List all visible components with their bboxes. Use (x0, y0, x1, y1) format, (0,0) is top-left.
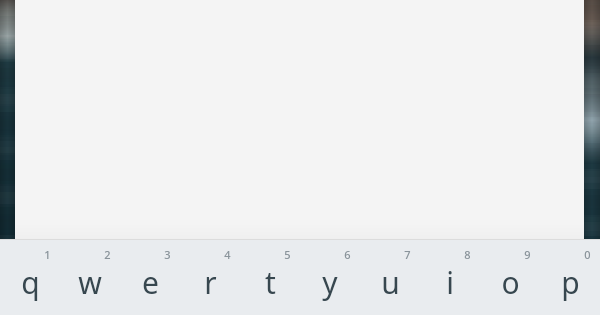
staticText: 8 (464, 247, 471, 262)
staticText: w (78, 262, 102, 303)
button[interactable]: 4 (180, 240, 240, 315)
staticText: i (446, 262, 454, 303)
other: Background photo (0, 0, 15, 240)
staticText: 1 (44, 247, 51, 262)
button[interactable]: 5 (240, 240, 300, 315)
staticText: 5 (284, 247, 291, 262)
staticText: 7 (404, 247, 411, 262)
button[interactable]: 3 (120, 240, 180, 315)
staticText: 9 (524, 247, 531, 262)
staticText: r (204, 262, 217, 303)
button[interactable]: 2 (60, 240, 120, 315)
staticText: t (265, 262, 276, 303)
staticText: q (21, 262, 40, 303)
button[interactable]: 6 (300, 240, 360, 315)
button[interactable]: 1 (0, 240, 60, 315)
button[interactable]: 9 (480, 240, 540, 315)
button[interactable]: 8 (420, 240, 480, 315)
staticText: 6 (344, 247, 351, 262)
staticText: 4 (224, 247, 231, 262)
staticText: u (381, 262, 400, 303)
button[interactable]: 0 (540, 240, 600, 315)
staticText: 0 (584, 247, 591, 262)
other: Background photo (584, 0, 600, 240)
staticText: p (561, 262, 580, 303)
staticText: o (501, 262, 520, 303)
button[interactable]: 7 (360, 240, 420, 315)
staticText: 3 (164, 247, 171, 262)
staticText: 2 (104, 247, 111, 262)
staticText: e (142, 262, 159, 303)
staticText: y (322, 262, 338, 303)
